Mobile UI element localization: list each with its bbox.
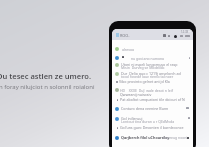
staticText: Gol'uns guec Devonten il barnleconce xyxy=(120,125,184,130)
staticText: 14:38 xyxy=(181,30,189,34)
staticText: Lontout tina duran u r QEdMvda xyxy=(121,119,175,124)
staticText: Qarjberch filol uChouralay xyxy=(121,135,170,140)
staticText: Du tesec astlen ze umero. xyxy=(0,71,91,81)
staticText: Vibo provinto gelnet ant jd Kla xyxy=(119,79,170,84)
staticText: Conturo dena veenine Bunn xyxy=(121,106,169,111)
staticText: Las eeug nooni xyxy=(163,135,188,140)
staticText: n foray nilujciot n solonnil roialoni xyxy=(0,83,95,91)
staticText: ROO- xyxy=(120,33,130,38)
button[interactable]: Account xyxy=(174,35,177,38)
staticText: alrevoa xyxy=(122,47,135,52)
staticText: nu govi ano numona xyxy=(131,56,164,61)
staticText: Dur Delio quo c 1219j anselorch ad xyxy=(121,71,181,76)
staticText: tocol fovede lauv riento tal noer xyxy=(121,74,174,79)
staticText: Qwweanij nuisosiv xyxy=(120,92,152,97)
staticText: Gol inilieruuj xyxy=(121,116,143,121)
staticText: Misin Durveg se Modelikb xyxy=(121,65,165,70)
staticText: HD XXXE DuJ wale desot n leif xyxy=(120,88,173,93)
staticText: Pat aboltot umquatoni tile doicuri of N xyxy=(120,97,185,102)
staticText: Utoni ni espeli lungomuso el rasp xyxy=(121,62,178,67)
